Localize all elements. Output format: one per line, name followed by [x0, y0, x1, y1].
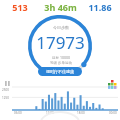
staticText: 11.86: [88, 1, 112, 13]
staticText: 1250: [2, 96, 9, 100]
button[interactable]: 513: [0, 0, 40, 14]
staticText: 00:00: [109, 111, 117, 115]
staticText: 17973: [36, 31, 85, 54]
button[interactable]: 11.86: [80, 0, 120, 14]
staticText: 513: [12, 1, 28, 13]
staticText: 今日步数: [53, 25, 69, 30]
staticText: 18:00: [77, 111, 85, 115]
staticText: 调时行不佳建康: [46, 69, 74, 74]
button[interactable]: Chart type: [5, 81, 10, 86]
button[interactable]: 3h 46m: [40, 0, 80, 14]
button[interactable]: Apps: [108, 80, 116, 88]
staticText: 3h 46m: [44, 1, 77, 13]
button[interactable]: 调时行不佳建康: [38, 67, 82, 76]
staticText: 06:00: [14, 111, 22, 115]
staticText: 目标 10000: [52, 55, 70, 60]
staticText: 2500: [2, 88, 9, 92]
staticText: 12:00: [46, 111, 54, 115]
staticText: 等级 步单运动: [50, 60, 72, 65]
